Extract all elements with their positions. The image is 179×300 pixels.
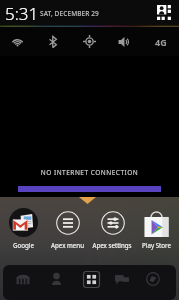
button[interactable]: Volume — [107, 27, 143, 56]
staticText: Apex menu — [51, 241, 84, 249]
button[interactable]: Phone — [10, 266, 36, 292]
button[interactable]: People — [43, 266, 69, 292]
button[interactable]: Messaging — [109, 266, 135, 292]
button[interactable]: All apps — [78, 266, 104, 292]
button[interactable]: Location — [71, 27, 107, 56]
staticText: 5:31 — [5, 2, 39, 25]
button[interactable]: Quick settings — [155, 3, 176, 22]
staticText: Apex settings — [92, 241, 132, 249]
button[interactable]: Bluetooth — [35, 27, 71, 56]
button[interactable]: Wi-Fi — [0, 27, 35, 56]
staticText: 4G — [155, 36, 167, 48]
button[interactable]: Mobile data 4G — [143, 27, 179, 56]
staticText: NO INTERNET CONNECTION — [0, 168, 179, 177]
button[interactable]: Apex settings — [90, 208, 134, 249]
staticText: SAT, DECEMBER 29 — [40, 9, 99, 18]
button[interactable]: Play Store — [134, 208, 178, 249]
button[interactable]: Google — [1, 208, 45, 249]
staticText: Google — [13, 241, 34, 249]
button[interactable]: Browser — [140, 266, 166, 292]
staticText: Play Store — [142, 241, 171, 249]
button[interactable]: Apex menu — [45, 208, 89, 249]
